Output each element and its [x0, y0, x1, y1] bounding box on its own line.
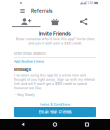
- staticText: Referrals: [31, 8, 52, 14]
- staticText: 1:46: [87, 1, 93, 5]
- staticText: Enter email address: [14, 51, 46, 56]
- staticText: Email Your Friends: [38, 110, 71, 114]
- staticText: Terms & Conditions: [39, 102, 70, 106]
- button[interactable]: Recent apps: [78, 119, 96, 130]
- staticText: Add Another Friend: [14, 59, 44, 64]
- button[interactable]: Home: [46, 119, 64, 130]
- staticText: Message: [14, 67, 31, 72]
- button[interactable]: Add Another Friend: [0, 58, 110, 64]
- button[interactable]: Terms & Conditions: [0, 102, 110, 107]
- staticText: Know someone who'd love this app? Invite…: [15, 37, 94, 45]
- button[interactable]: Back: [14, 119, 32, 130]
- button[interactable]: Menu: [18, 6, 27, 15]
- staticText: I've been using this app for a while now…: [14, 73, 95, 90]
- staticText: Invite Friends: [39, 30, 71, 37]
- button[interactable]: Rewards: [41, 18, 69, 25]
- button[interactable]: Share: [69, 18, 98, 25]
- button[interactable]: Invite friends: [12, 18, 41, 25]
- button[interactable]: Email Your Friends: [14, 107, 96, 117]
- staticText: - Amy Neely: [14, 93, 35, 97]
